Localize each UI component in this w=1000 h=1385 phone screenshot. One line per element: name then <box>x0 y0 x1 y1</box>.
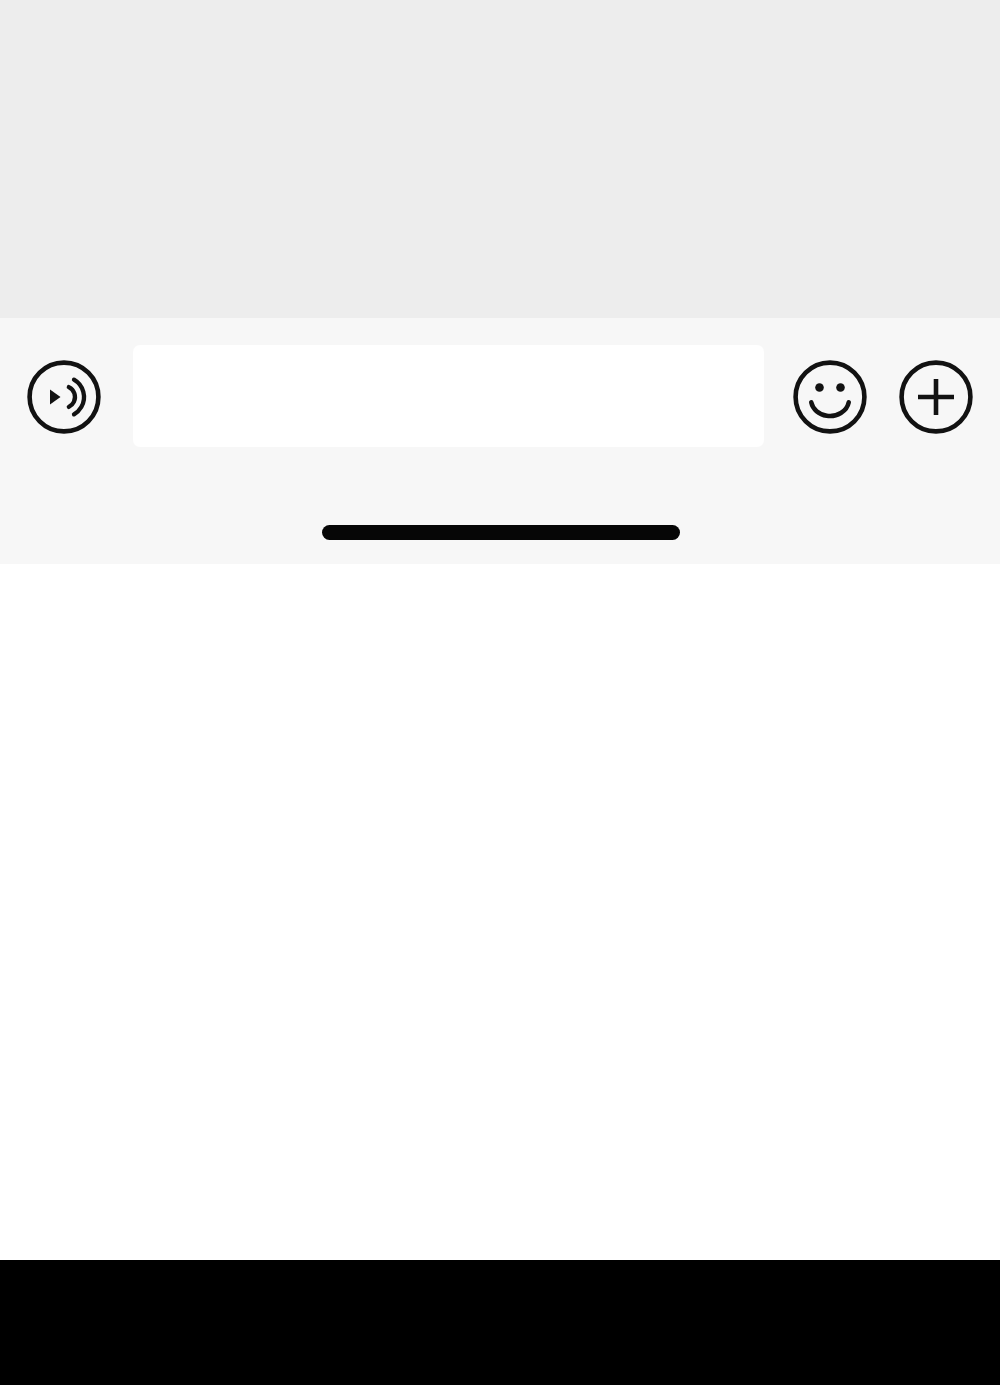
button[interactable]: Emoji <box>793 360 867 434</box>
button[interactable]: Add attachment <box>899 360 973 434</box>
button[interactable]: Voice message <box>27 360 101 434</box>
